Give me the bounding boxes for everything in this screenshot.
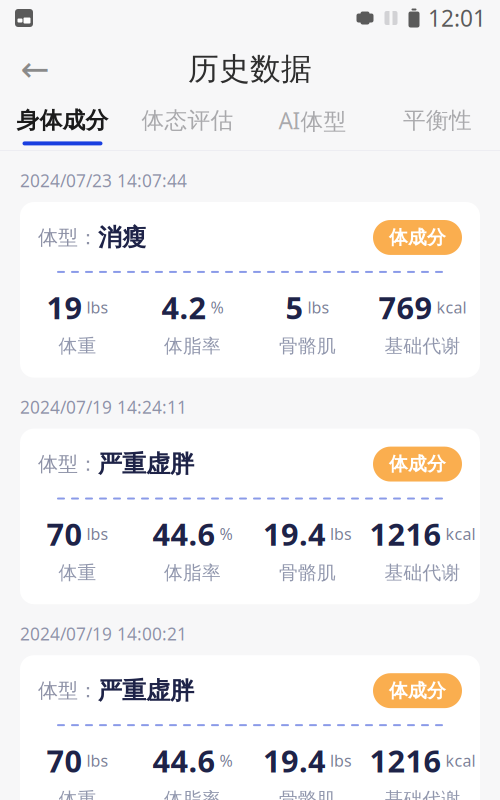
button[interactable]: 身体成分 [0,102,125,150]
staticText: 平衡性 [403,107,472,134]
button[interactable]: 平衡性 [375,102,500,150]
staticText: 体型： [38,678,98,703]
staticText: 体脂率 [164,561,221,584]
staticText: 5 [285,287,303,328]
staticText: % [219,750,232,771]
staticText: AI体型 [278,105,346,136]
button[interactable]: 体态评估 [125,102,250,150]
staticText: 1216 [369,513,441,554]
staticText: 体重 [58,561,96,584]
staticText: 消瘦 [98,223,146,252]
staticText: 历史数据 [188,50,312,88]
staticText: 严重虚胖 [98,449,194,479]
staticText: 基础代谢 [384,788,460,800]
staticText: 体脂率 [164,788,221,800]
staticText: 严重虚胖 [98,676,194,705]
button[interactable]: 体型： [20,429,480,604]
staticText: 70 [46,740,82,781]
staticText: kcal [445,523,475,544]
staticText: % [219,523,232,544]
staticText: 4.2 [161,287,206,328]
staticText: 19.4 [263,740,326,781]
staticText: 骨骼肌 [279,335,336,358]
staticText: 体态评估 [141,107,233,134]
staticText: 骨骼肌 [279,561,336,584]
staticText: lbs [86,297,108,318]
staticText: 体成分 [389,679,446,702]
staticText: 70 [46,513,82,554]
staticText: 身体成分 [16,107,108,134]
staticText: 44.6 [152,740,215,781]
staticText: 体重 [58,335,96,358]
button[interactable]: Back [13,47,57,91]
staticText: lbs [330,523,352,544]
staticText: kcal [436,297,466,318]
staticText: lbs [330,750,352,771]
staticText: 体重 [58,788,96,800]
staticText: ← [20,49,49,89]
staticText: 19.4 [263,513,326,554]
button[interactable]: 体型： [20,202,480,378]
staticText: 体成分 [389,453,446,475]
staticText: 基础代谢 [384,561,460,584]
staticText: 12:01 [428,3,486,33]
staticText: 769 [378,287,432,328]
staticText: 基础代谢 [384,335,460,358]
staticText: 体成分 [389,226,446,249]
staticText: 体脂率 [164,335,221,358]
staticText: lbs [307,297,329,318]
staticText: 44.6 [152,513,215,554]
staticText: 2024/07/19 14:00:21 [20,622,187,645]
staticText: 体型： [38,452,98,476]
staticText: kcal [445,750,475,771]
button[interactable]: 体型： [20,655,480,800]
staticText: 19 [46,287,82,328]
staticText: 1216 [369,740,441,781]
staticText: 2024/07/23 14:07:44 [20,169,187,192]
staticText: 体型： [38,225,98,250]
staticText: 骨骼肌 [279,788,336,800]
staticText: lbs [86,523,108,544]
button[interactable]: AI体型 [250,102,375,150]
staticText: 2024/07/19 14:24:11 [20,396,187,419]
staticText: % [210,297,223,318]
staticText: lbs [86,750,108,771]
